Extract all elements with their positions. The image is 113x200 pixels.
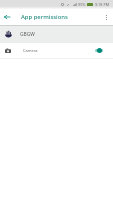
staticText: GBGW: [20, 31, 35, 38]
button[interactable]: Camera: [0, 43, 113, 58]
staticText: 95%: [78, 2, 86, 7]
staticText: App permissions: [21, 13, 68, 21]
button[interactable]: Back: [0, 9, 14, 25]
button[interactable]: GBGW: [0, 26, 113, 43]
button[interactable]: Camera permission toggle: [90, 43, 110, 58]
staticText: 9:18 PM: [95, 2, 110, 7]
button[interactable]: More options: [99, 9, 113, 25]
staticText: Camera: [23, 48, 38, 53]
